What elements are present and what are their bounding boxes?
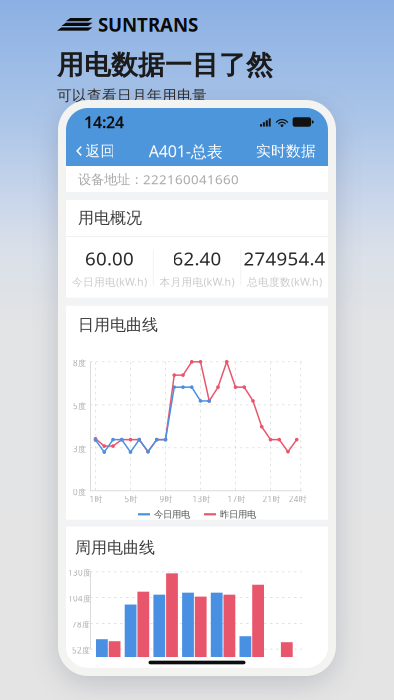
staticText: 实时数据: [256, 142, 316, 160]
staticText: 设备地址：222160041660: [78, 170, 239, 188]
staticText: 总电度数(kW.h): [247, 275, 322, 289]
staticText: SUNTRANS: [98, 12, 198, 37]
staticText: 21时: [262, 494, 280, 504]
button[interactable]: 实时数据: [248, 136, 328, 166]
staticText: 52度: [72, 645, 90, 656]
staticText: 1时: [89, 494, 102, 504]
staticText: 13时: [192, 494, 210, 504]
staticText: 24时: [289, 494, 307, 504]
staticText: 104度: [68, 593, 91, 604]
staticText: 周用电曲线: [75, 538, 155, 557]
staticText: 用电概况: [78, 208, 142, 228]
staticText: 60.00: [85, 246, 134, 271]
staticText: 62.40: [172, 246, 221, 271]
staticText: 78度: [72, 619, 90, 630]
staticText: 今日用电: [154, 509, 190, 520]
staticText: 5时: [124, 494, 137, 504]
staticText: A401-总表: [149, 140, 223, 162]
staticText: 用电数据一目了然: [57, 49, 273, 82]
staticText: 昨日用电: [220, 509, 256, 520]
staticText: 返回: [85, 142, 115, 160]
staticText: 9时: [159, 494, 172, 504]
staticText: 本月用电(kW.h): [159, 275, 234, 289]
staticText: 可以查看日月年用电量: [57, 86, 207, 104]
staticText: 14:24: [84, 111, 124, 133]
staticText: 日用电曲线: [78, 315, 158, 335]
staticText: 今日用电(kW.h): [72, 275, 147, 289]
staticText: 274954.4: [244, 246, 326, 271]
staticText: 3度: [73, 444, 86, 454]
staticText: 0度: [73, 487, 86, 497]
staticText: 5度: [73, 401, 86, 411]
staticText: 130度: [68, 567, 91, 578]
staticText: 17时: [227, 494, 245, 504]
staticText: 8度: [73, 358, 86, 368]
button[interactable]: 返回: [66, 136, 123, 166]
